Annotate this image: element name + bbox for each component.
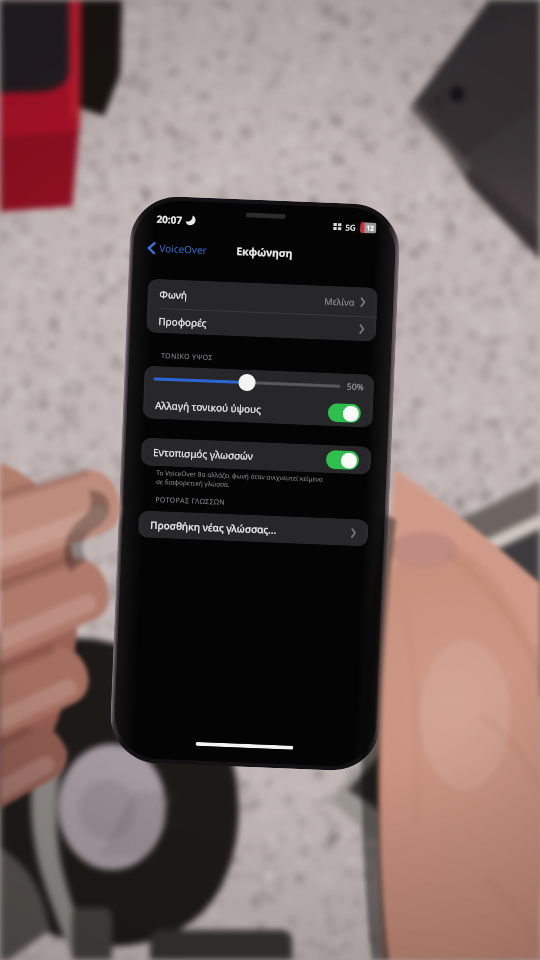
staticText: Προσθήκη νέας γλώσσας... [150,518,277,537]
button[interactable]: Αλλαγή τονικού ύψους [142,390,373,428]
button[interactable]: Toggle Εντοπισμός γλωσσών [326,450,359,470]
staticText: 5G [345,221,356,233]
button[interactable]: Toggle Αλλαγή τονικού ύψους [327,403,361,423]
staticText: ΤΟΝΙΚΟ ΥΨΟΣ [161,351,213,363]
staticText: VoiceOver [159,241,208,257]
button[interactable]: Εντοπισμός γλωσσών [141,437,371,475]
staticText: Φωνή [159,287,188,302]
staticText: 12 [366,223,375,233]
button[interactable]: Φωνή [147,278,378,317]
button[interactable]: VoiceOver [144,237,211,260]
staticText: Εντοπισμός γλωσσών [153,445,253,463]
staticText: 20:07 [156,212,183,227]
staticText: Το VoiceOver θα αλλάζει φωνή όταν ανιχνε… [156,468,323,493]
staticText: Προφορές [158,314,208,330]
staticText: ΡΟΤΟΡΑΣ ΓΛΩΣΣΩΝ [155,495,225,508]
staticText: Εκφώνηση [236,244,293,260]
button[interactable] [154,370,340,395]
button[interactable]: Προσθήκη νέας γλώσσας... [138,510,369,547]
staticText: Μελίνα [324,295,356,308]
staticText: 50% [347,381,364,393]
staticText: Αλλαγή τονικού ύψους [155,398,262,416]
button[interactable]: Προφορές [146,308,377,342]
